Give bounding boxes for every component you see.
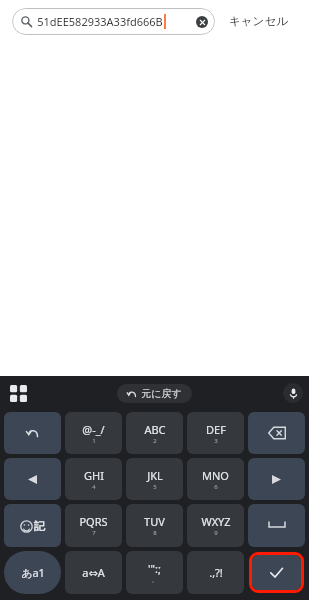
- button[interactable]: GHI: [65, 458, 122, 500]
- staticText: 記: [34, 519, 45, 533]
- staticText: 5: [153, 483, 157, 491]
- button[interactable]: Cursor left: [4, 458, 61, 500]
- button[interactable]: Backspace: [248, 412, 305, 454]
- button[interactable]: Voice input: [283, 383, 303, 403]
- button[interactable]: TUV: [126, 504, 183, 547]
- staticText: 。: [152, 576, 158, 584]
- button[interactable]: @-_/: [65, 412, 122, 454]
- staticText: 2: [153, 437, 157, 445]
- staticText: 8: [153, 529, 157, 537]
- staticText: JKL: [147, 468, 163, 483]
- button[interactable]: JKL: [126, 458, 183, 500]
- staticText: 4: [92, 483, 96, 491]
- staticText: 51dEE582933A33fd666B: [37, 14, 163, 29]
- staticText: DEF: [206, 422, 226, 437]
- staticText: WXYZ: [201, 514, 231, 529]
- staticText: キャンセル: [229, 14, 288, 28]
- button[interactable]: Undo: [4, 412, 61, 454]
- button[interactable]: PQRS: [65, 504, 122, 547]
- button[interactable]: Cursor right: [248, 458, 305, 500]
- button[interactable]: .,?!: [187, 551, 244, 594]
- staticText: TUV: [144, 514, 165, 529]
- staticText: ABC: [144, 422, 166, 437]
- button[interactable]: '":;: [126, 551, 183, 594]
- button[interactable]: Keyboard settings: [6, 381, 30, 405]
- button[interactable]: MNO: [187, 458, 244, 500]
- staticText: 6: [214, 483, 218, 491]
- staticText: あa1: [21, 565, 45, 580]
- button[interactable]: キャンセル: [221, 8, 296, 34]
- button[interactable]: あa1: [4, 551, 61, 594]
- button[interactable]: WXYZ: [187, 504, 244, 547]
- staticText: 3: [214, 437, 218, 445]
- button[interactable]: Space: [248, 504, 305, 547]
- button[interactable]: DEF: [187, 412, 244, 454]
- button[interactable]: 51dEE582933A33fd666B: [12, 8, 215, 35]
- button[interactable]: Emoji: [4, 504, 61, 547]
- staticText: GHI: [84, 468, 104, 483]
- button[interactable]: Clear text: [196, 16, 208, 28]
- staticText: MNO: [202, 468, 229, 483]
- button[interactable]: ABC: [126, 412, 183, 454]
- button[interactable]: a⇔A: [65, 551, 122, 594]
- staticText: 7: [92, 529, 96, 537]
- staticText: @-_/: [82, 422, 105, 437]
- staticText: .,?!: [209, 565, 223, 580]
- staticText: '":;: [148, 561, 161, 576]
- button[interactable]: 元に戻す: [117, 384, 192, 403]
- staticText: a⇔A: [82, 565, 105, 580]
- staticText: 元に戻す: [141, 387, 182, 400]
- staticText: 1: [92, 437, 96, 445]
- staticText: PQRS: [79, 514, 108, 529]
- button[interactable]: Confirm: [252, 555, 301, 590]
- staticText: 9: [214, 529, 218, 537]
